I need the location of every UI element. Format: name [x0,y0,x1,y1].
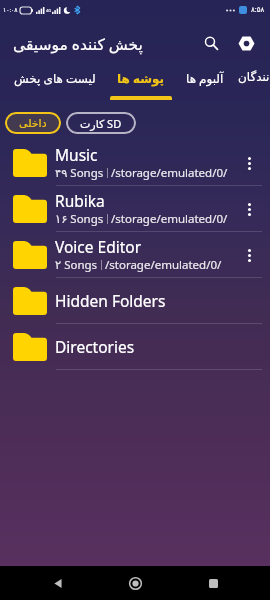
staticText: Rubika [55,190,105,211]
button[interactable]: Hidden Folders [0,278,270,323]
button[interactable]: پوشه ها [103,66,179,100]
staticText: داخلی [19,117,47,130]
button[interactable]: Voice Editor [0,232,270,277]
staticText: ۴۹ Songs [55,165,104,181]
button[interactable]: لیست های پخش [7,66,103,100]
staticText: 4G [46,8,52,13]
staticText: لیست های پخش [14,70,96,86]
staticText: ۲ Songs [55,257,98,273]
staticText: پوشه ها [117,70,165,86]
button[interactable]: More options [236,196,262,222]
button[interactable]: Back [38,566,78,600]
staticText: آلبوم ها [186,70,224,86]
staticText: Voice Editor [55,236,142,257]
staticText: پخش کننده موسیقی [13,33,143,54]
staticText: Hidden Folders [55,290,166,311]
staticText: خوانندگان [238,70,270,84]
staticText: /storage/emulated/0/ [105,257,222,273]
button[interactable]: خوانندگان [231,66,270,100]
button[interactable]: Recents [193,566,233,600]
button[interactable]: Settings [229,26,263,60]
staticText: Directories [55,336,135,357]
button[interactable]: More options [236,150,262,176]
staticText: Music [55,144,98,165]
staticText: /storage/emulated/0/ [111,165,228,181]
button[interactable]: Home [115,566,155,600]
staticText: ۸:۵۸ [251,5,265,15]
staticText: ۱۶ Songs [55,211,104,227]
button[interactable]: کارت SD [66,112,136,134]
button[interactable]: Music [0,140,270,185]
button[interactable]: Rubika [0,186,270,231]
staticText: /storage/emulated/0/ [111,211,228,227]
button[interactable]: داخلی [5,112,61,134]
button[interactable]: Search [194,26,228,60]
button[interactable]: More options [236,242,262,268]
staticText: ۱۰:۰۸ [3,6,18,14]
button[interactable]: آلبوم ها [179,66,231,100]
staticText: کارت SD [80,116,122,131]
button[interactable]: Directories [0,324,270,369]
